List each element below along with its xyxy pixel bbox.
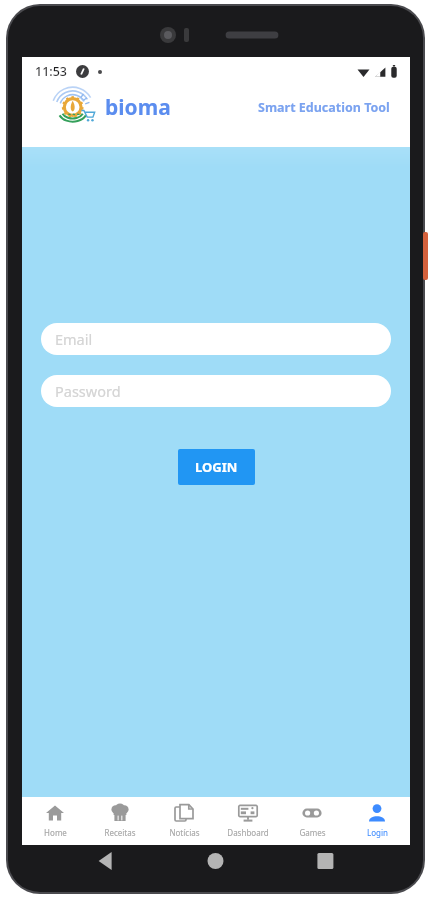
button[interactable]: Email	[41, 323, 391, 355]
button[interactable]: Dashboard	[217, 797, 279, 845]
other: Notícias	[174, 803, 194, 823]
other: Receitas	[110, 803, 130, 823]
button[interactable]: Receitas	[89, 797, 151, 845]
other: Login	[367, 803, 387, 823]
staticText: Email	[55, 329, 93, 349]
button[interactable]: Notícias	[153, 797, 215, 845]
staticText: LOGIN	[195, 458, 238, 476]
staticText: Dashboard	[227, 827, 269, 838]
staticText: 11:53	[35, 63, 68, 80]
button[interactable]: Login	[346, 797, 408, 845]
staticText: Password	[55, 381, 121, 401]
other: Home	[45, 803, 65, 823]
staticText: Login	[367, 827, 388, 838]
staticText: Home	[44, 827, 67, 838]
button[interactable]: Password	[41, 375, 391, 407]
button[interactable]: LOGIN	[178, 449, 255, 485]
staticText: Smart Education Tool	[258, 99, 390, 116]
staticText: Games	[299, 827, 326, 838]
button[interactable]: Games	[281, 797, 343, 845]
button[interactable]: Home	[24, 797, 86, 845]
other: Games	[302, 803, 322, 823]
staticText: Receitas	[104, 827, 136, 838]
other: Dashboard	[238, 803, 258, 823]
staticText: Notícias	[169, 827, 200, 838]
staticText: bioma	[105, 93, 171, 122]
